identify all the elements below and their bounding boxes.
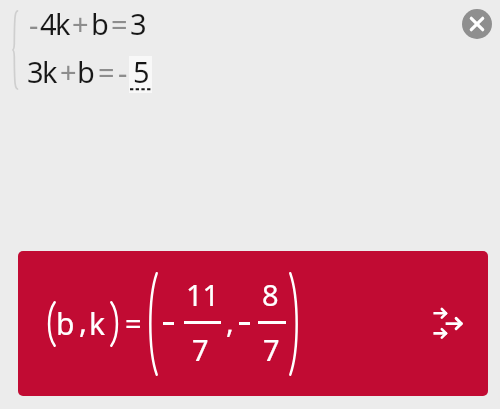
staticText: k	[42, 52, 58, 91]
button[interactable]: Show solution steps	[428, 303, 468, 343]
staticText: +	[72, 4, 89, 43]
staticText: -	[118, 53, 128, 92]
staticText: 8	[262, 275, 279, 314]
staticText: 11	[186, 275, 220, 314]
button[interactable]: Edit value 5	[129, 56, 152, 93]
staticText: =	[98, 52, 115, 91]
staticText: 3	[130, 4, 147, 43]
staticText: b	[56, 303, 75, 344]
button[interactable]: Close	[462, 9, 492, 39]
staticText: k	[89, 303, 106, 344]
staticText: 7	[192, 330, 209, 369]
staticText: -	[29, 5, 39, 44]
staticText: 7	[263, 330, 280, 369]
staticText: 3	[27, 52, 44, 91]
button[interactable]: Answer: (b, k) = (-11/7, -8/7)	[18, 251, 488, 396]
staticText: +	[60, 52, 77, 91]
staticText: ,	[79, 301, 88, 342]
staticText: =	[125, 303, 142, 342]
staticText: 5	[133, 52, 150, 91]
staticText: b	[91, 4, 109, 43]
staticText: ,	[226, 302, 234, 341]
staticText: k	[55, 4, 71, 43]
staticText: 4	[40, 4, 57, 43]
staticText: b	[77, 52, 95, 91]
staticText: =	[111, 4, 128, 43]
